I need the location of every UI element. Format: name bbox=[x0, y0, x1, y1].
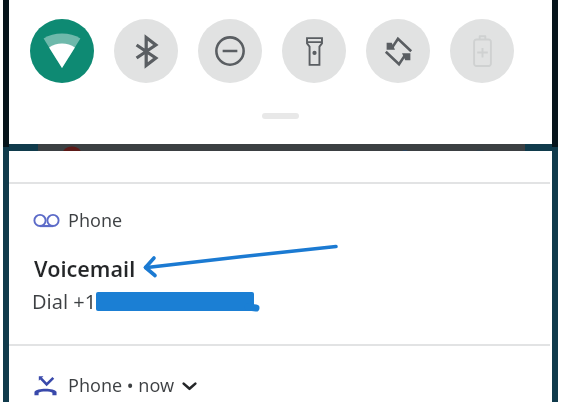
button[interactable]: Expand quick settings bbox=[262, 113, 299, 119]
button[interactable]: Phone bbox=[31, 205, 531, 235]
staticText: Dial +1 bbox=[32, 288, 97, 315]
button[interactable]: Bluetooth bbox=[114, 19, 178, 83]
button[interactable]: Flashlight bbox=[282, 19, 346, 83]
staticText: Phone bbox=[68, 208, 123, 233]
button[interactable]: Battery Saver bbox=[450, 19, 514, 83]
staticText: Phone • now bbox=[68, 373, 175, 398]
staticText: Voicemail bbox=[34, 254, 136, 283]
button[interactable]: Auto rotate bbox=[366, 19, 430, 83]
button[interactable]: Phone • now bbox=[31, 369, 281, 401]
button[interactable]: Do Not Disturb bbox=[198, 19, 262, 83]
button[interactable]: Wi-Fi bbox=[30, 19, 94, 83]
